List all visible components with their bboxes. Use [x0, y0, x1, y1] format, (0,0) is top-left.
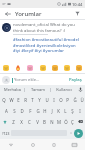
- button[interactable]: Emoji: [26, 64, 34, 72]
- button[interactable]: Emoji: [2, 64, 10, 72]
- button[interactable]: B: [41, 116, 48, 127]
- button[interactable]: J: [48, 105, 55, 116]
- button[interactable]: Filtrele: [73, 9, 82, 18]
- button[interactable]: P: [64, 94, 71, 105]
- button[interactable]: Ana ekran: [22, 139, 43, 150]
- staticText: Merhaba: [4, 87, 21, 92]
- button[interactable]: Profil fotoğrafı: [0, 20, 85, 55]
- button[interactable]: C: [25, 116, 33, 127]
- staticText: Z: [12, 119, 15, 125]
- staticText: R: [24, 97, 27, 103]
- staticText: 10:44: [72, 2, 83, 7]
- staticText: P: [66, 97, 69, 103]
- button[interactable]: G: [34, 105, 41, 116]
- button[interactable]: X: [17, 116, 25, 127]
- staticText: N: [50, 119, 54, 125]
- staticText: G: [36, 108, 40, 114]
- staticText: Q: [2, 97, 6, 103]
- button[interactable]: S: [10, 105, 18, 116]
- staticText: Y: [38, 97, 41, 103]
- button[interactable]: Son kullanılanlar: [43, 139, 64, 150]
- button[interactable]: Y: [36, 94, 43, 105]
- button[interactable]: D: [18, 105, 26, 116]
- button[interactable]: Tamam: [25, 85, 50, 94]
- button[interactable]: Yorum ekle...: [12, 77, 66, 83]
- staticText: ?123: [2, 131, 10, 136]
- button[interactable]: Sayılar: [1, 127, 11, 139]
- button[interactable]: Emoji: [39, 64, 47, 72]
- button[interactable]: Paylaş: [68, 76, 83, 84]
- button[interactable]: Profil fotoğrafı: [2, 23, 11, 32]
- button[interactable]: U: [43, 94, 50, 105]
- button[interactable]: Nokta: [67, 127, 74, 139]
- staticText: K: [57, 108, 60, 114]
- button[interactable]: Merhaba: [0, 85, 24, 94]
- button[interactable]: Emoji: [14, 64, 22, 72]
- button[interactable]: Geri: [0, 139, 22, 150]
- staticText: A: [5, 108, 8, 114]
- button[interactable]: Sesle yazma: [76, 85, 85, 94]
- button[interactable]: V: [33, 116, 41, 127]
- button[interactable]: Shift: [0, 116, 9, 127]
- button[interactable]: Ç: [69, 116, 76, 127]
- button[interactable]: Ü: [78, 94, 85, 105]
- staticText: B: [43, 119, 46, 125]
- button[interactable]: Klavyeyi kapat: [64, 139, 85, 150]
- button[interactable]: Profil: [2, 76, 10, 84]
- staticText: Yorumlar: [15, 10, 42, 18]
- button[interactable]: I: [76, 105, 83, 116]
- staticText: X: [20, 119, 23, 125]
- staticText: D: [20, 108, 24, 114]
- button[interactable]: F: [26, 105, 34, 116]
- staticText: Ş: [71, 108, 74, 114]
- staticText: F: [29, 108, 32, 114]
- staticText: Tamam: [31, 87, 45, 92]
- staticText: Ü: [80, 97, 84, 103]
- button[interactable]: Z: [9, 116, 17, 127]
- button[interactable]: Kullanıcı: [51, 85, 76, 94]
- staticText: Paylaş: [69, 77, 82, 83]
- staticText: I: [53, 97, 55, 103]
- staticText: Ç: [71, 119, 74, 125]
- button[interactable]: Gönder: [74, 129, 83, 138]
- staticText: J: [51, 108, 53, 114]
- button[interactable]: N: [48, 116, 55, 127]
- staticText: Ö: [64, 119, 68, 125]
- staticText: Yorum ekle...: [14, 77, 40, 83]
- button[interactable]: I: [50, 94, 57, 105]
- button[interactable]: H: [41, 105, 48, 116]
- staticText: I: [79, 108, 81, 114]
- staticText: #fashion #mostbeautiful #model #mostlike…: [13, 37, 82, 53]
- button[interactable]: W: [8, 94, 15, 105]
- button[interactable]: Emoji: [75, 64, 83, 72]
- button[interactable]: E: [15, 94, 22, 105]
- button[interactable]: Ö: [62, 116, 69, 127]
- button[interactable]: Sil: [76, 116, 85, 127]
- button[interactable]: M: [55, 116, 62, 127]
- button[interactable]: Emoji: [51, 64, 59, 72]
- button[interactable]: Q: [0, 94, 8, 105]
- staticText: L: [64, 108, 67, 114]
- button[interactable]: Ş: [69, 105, 76, 116]
- staticText: V: [36, 119, 39, 125]
- button[interactable]: Emoji: [63, 64, 71, 72]
- button[interactable]: K: [55, 105, 62, 116]
- staticText: H: [43, 108, 47, 114]
- staticText: O: [59, 97, 63, 103]
- staticText: S: [13, 108, 16, 114]
- button[interactable]: O: [57, 94, 64, 105]
- staticText: W: [9, 97, 14, 103]
- staticText: T: [31, 97, 34, 103]
- button[interactable]: R: [22, 94, 29, 105]
- staticText: C: [28, 119, 31, 125]
- staticText: M: [57, 119, 61, 125]
- staticText: E: [17, 97, 20, 103]
- staticText: Ğ: [73, 97, 77, 103]
- button[interactable]: A: [2, 105, 10, 116]
- button[interactable]: L: [62, 105, 69, 116]
- button[interactable]: Geri: [3, 9, 12, 18]
- button[interactable]: T: [29, 94, 36, 105]
- button[interactable]: Ğ: [71, 94, 78, 105]
- staticText: nosdemant_oficial What do you think abou…: [13, 22, 82, 33]
